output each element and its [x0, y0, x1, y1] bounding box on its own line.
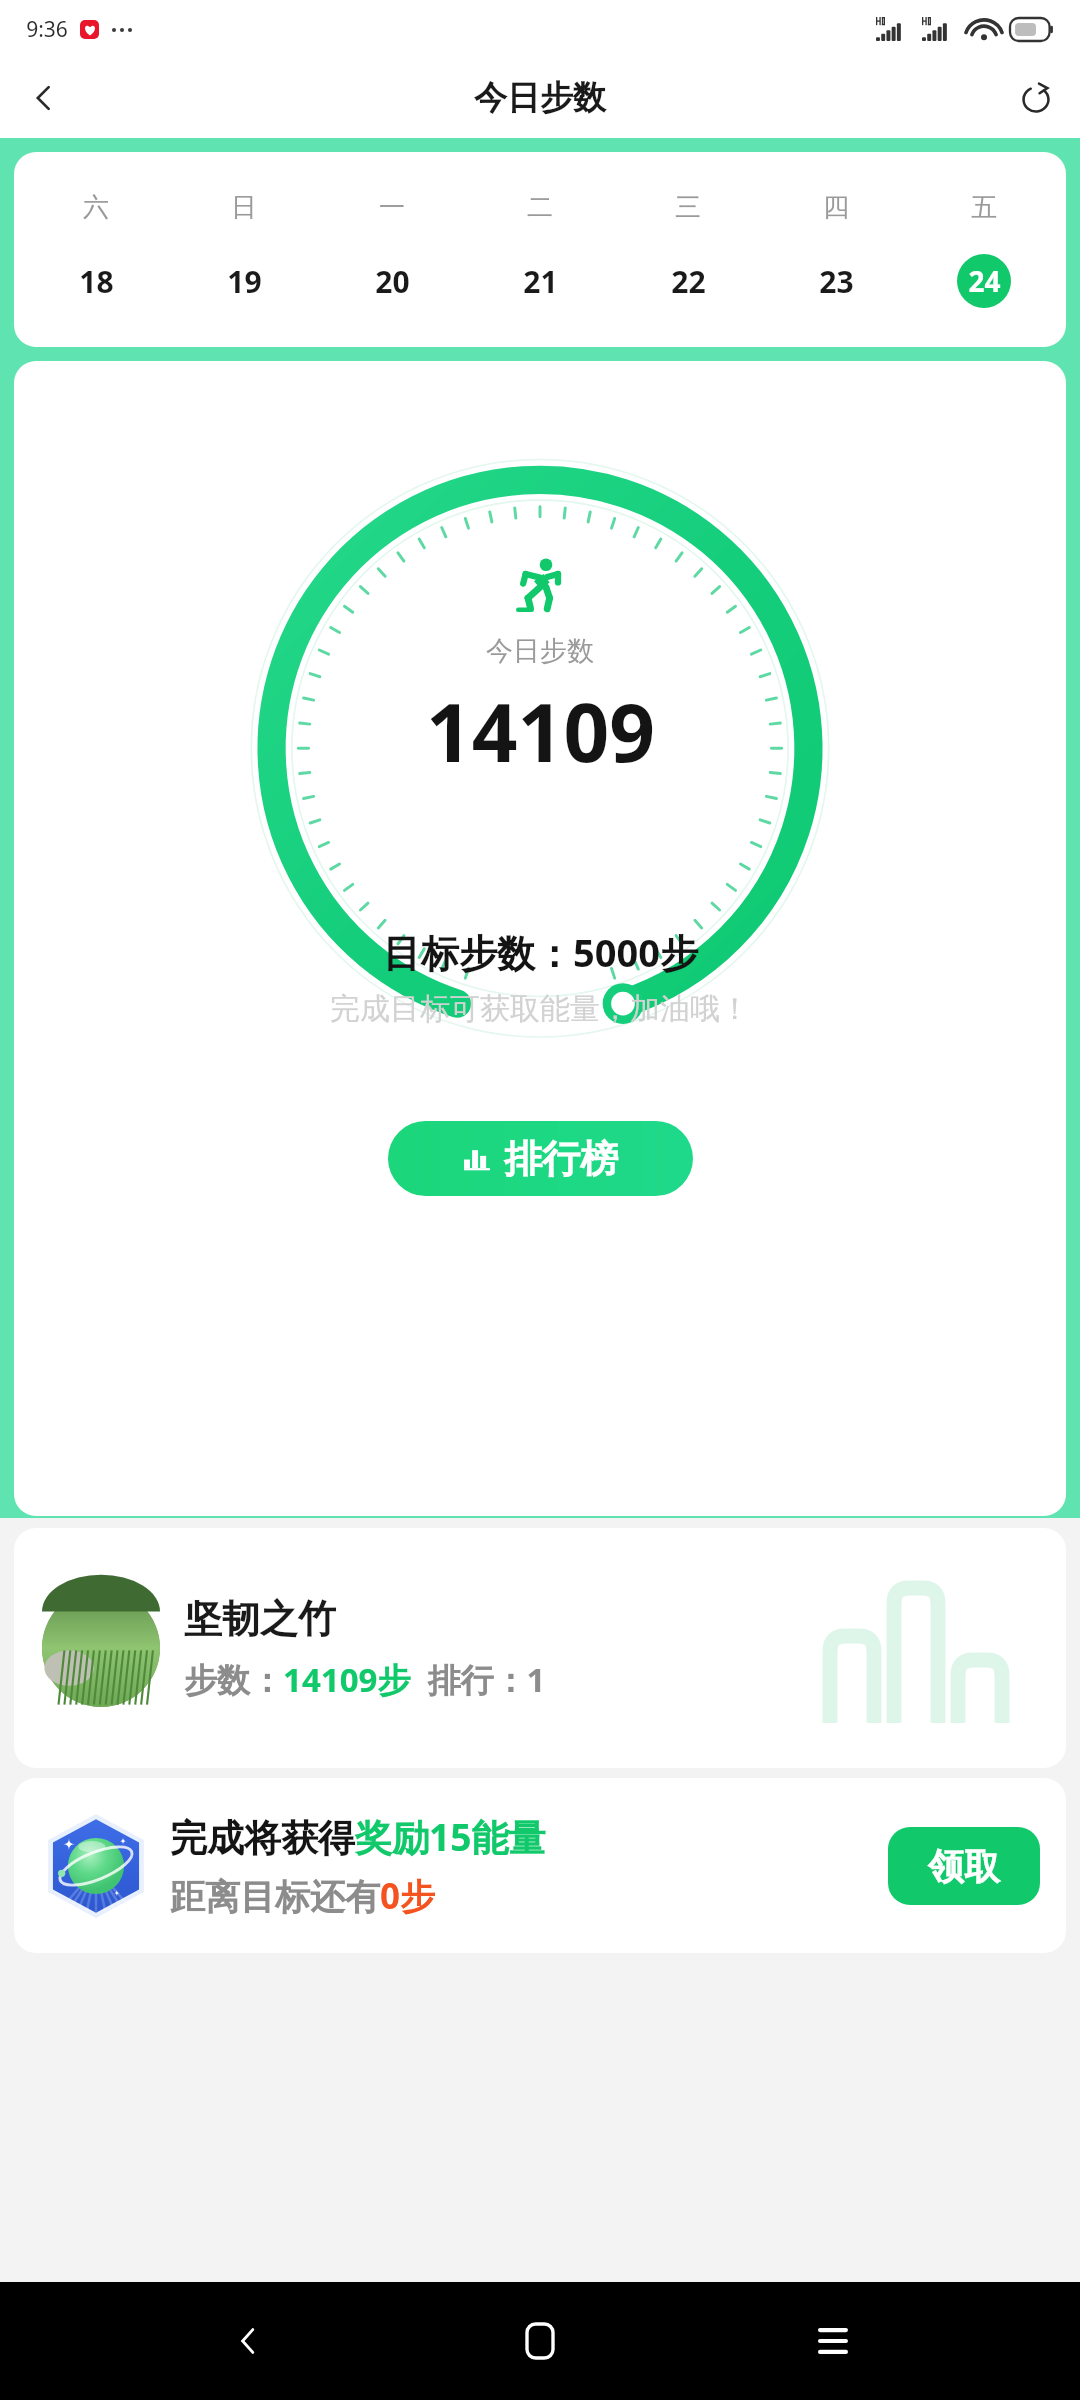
staticText: 19: [227, 261, 262, 302]
button[interactable]: Home: [495, 2296, 585, 2386]
staticText: 二: [527, 191, 553, 224]
staticText: 目标步数：5000步: [383, 926, 698, 978]
staticText: 今日步数: [474, 77, 606, 119]
button[interactable]: Back: [14, 68, 74, 128]
staticText: 22: [671, 261, 706, 302]
staticText: 排行榜: [504, 1135, 618, 1183]
button[interactable]: Share: [1006, 68, 1066, 128]
staticText: 步数：14109步 排行：1: [184, 1657, 546, 1702]
button[interactable]: 坚韧之竹: [14, 1528, 1066, 1768]
staticText: 坚韧之竹: [184, 1595, 336, 1643]
button[interactable]: Back: [203, 2296, 293, 2386]
button[interactable]: 排行榜: [388, 1121, 693, 1196]
staticText: 完成将获得奖励15能量: [170, 1811, 546, 1862]
button[interactable]: 六: [14, 152, 1066, 347]
staticText: 四: [823, 191, 849, 224]
staticText: 日: [231, 191, 257, 224]
staticText: 21: [523, 261, 558, 302]
staticText: 六: [83, 191, 109, 224]
staticText: 一: [379, 191, 405, 224]
staticText: 23: [819, 261, 854, 302]
button[interactable]: Recents: [788, 2296, 878, 2386]
staticText: 领取: [928, 1844, 1000, 1889]
staticText: 18: [79, 261, 114, 302]
staticText: 三: [675, 191, 701, 224]
staticText: 距离目标还有0步: [170, 1872, 436, 1920]
staticText: 五: [971, 191, 997, 224]
staticText: 14109: [426, 676, 655, 785]
button[interactable]: 领取: [888, 1827, 1040, 1905]
staticText: 9:36: [26, 15, 68, 44]
staticText: 今日步数: [486, 634, 594, 668]
staticText: 24: [968, 262, 1001, 300]
staticText: 20: [375, 261, 410, 302]
staticText: 完成目标可获取能量，加油哦！: [330, 990, 750, 1028]
